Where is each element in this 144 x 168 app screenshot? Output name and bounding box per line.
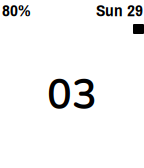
staticText: 80% <box>2 0 31 22</box>
staticText: Sun 29 <box>96 0 143 22</box>
button[interactable]: Complication <box>133 24 144 34</box>
button[interactable]: 80% <box>0 0 31 20</box>
staticText: 03 <box>47 67 97 123</box>
button[interactable]: Sun 29 <box>96 0 144 20</box>
